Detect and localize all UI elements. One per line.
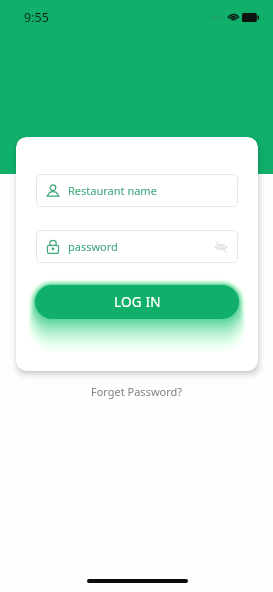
staticText: Restaurant name [68, 183, 157, 198]
staticText: LOG IN [114, 293, 161, 311]
staticText: 9:55 [24, 9, 49, 26]
button[interactable]: password [36, 230, 238, 263]
button[interactable]: LOG IN [35, 285, 239, 319]
staticText: password [68, 239, 118, 254]
button[interactable]: Restaurant name [36, 174, 238, 207]
button[interactable]: Toggle password visibility [212, 238, 230, 256]
button[interactable]: Forget Password? [0, 384, 273, 399]
